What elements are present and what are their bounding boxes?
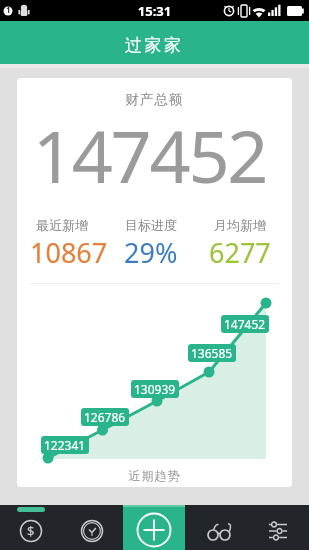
staticText: 136585 <box>191 345 233 361</box>
staticText: 10867 <box>30 234 108 271</box>
staticText: 月均新增 <box>214 217 266 233</box>
staticText: 147452 <box>17 106 287 204</box>
staticText: 过家家 <box>125 35 184 56</box>
staticText: 1 <box>6 4 11 15</box>
staticText: 最近新增 <box>36 217 88 233</box>
staticText: 126786 <box>84 409 126 425</box>
button[interactable]: $ <box>0 505 61 550</box>
button[interactable] <box>247 505 309 550</box>
button[interactable] <box>123 505 185 550</box>
staticText: 近期趋势 <box>17 468 292 483</box>
staticText: 财产总额 <box>17 91 292 108</box>
button[interactable] <box>61 505 123 550</box>
button[interactable] <box>185 505 247 550</box>
staticText: 147452 <box>224 316 266 332</box>
staticText: 29% <box>124 234 178 271</box>
staticText: 130939 <box>134 381 176 397</box>
staticText: 6277 <box>209 234 271 271</box>
staticText: $ <box>27 522 35 540</box>
staticText: 15:31 <box>0 2 309 20</box>
staticText: 122341 <box>44 437 86 453</box>
staticText: 目标进度 <box>125 217 177 233</box>
